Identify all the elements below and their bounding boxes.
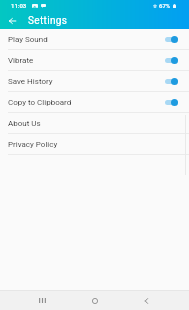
button[interactable]: Copy to Clipboard — [0, 92, 189, 112]
staticText: About Us — [8, 119, 41, 128]
staticText: Play Sound — [8, 35, 48, 44]
button[interactable]: About Us — [0, 113, 189, 133]
staticText: Save History — [8, 77, 53, 86]
button[interactable]: Save History — [0, 71, 189, 91]
button[interactable]: Recent apps — [31, 291, 54, 310]
staticText: 11:03 — [11, 2, 27, 9]
button[interactable]: Back — [135, 291, 158, 310]
staticText: Copy to Clipboard — [8, 98, 72, 107]
button[interactable]: Privacy Policy — [0, 134, 189, 154]
button[interactable]: Play Sound — [0, 29, 189, 49]
staticText: Privacy Policy — [8, 140, 58, 149]
button[interactable]: Back — [0, 12, 24, 29]
button[interactable]: Home — [83, 291, 106, 310]
button[interactable]: Vibrate — [0, 50, 189, 70]
staticText: Settings — [28, 15, 68, 27]
staticText: 67% — [159, 2, 171, 9]
staticText: Vibrate — [8, 56, 34, 65]
